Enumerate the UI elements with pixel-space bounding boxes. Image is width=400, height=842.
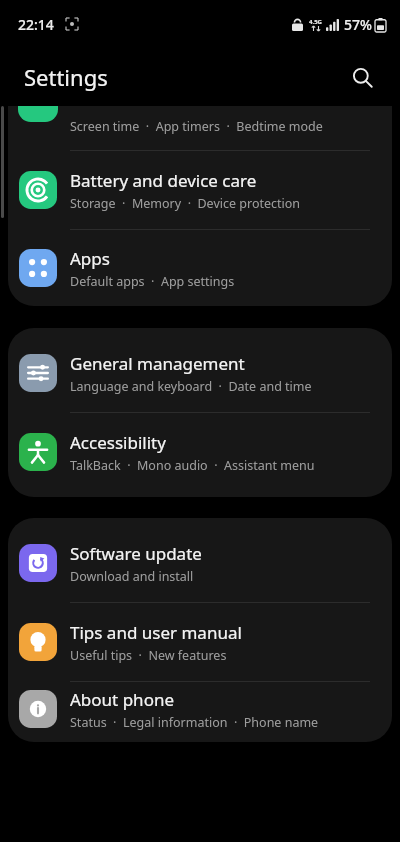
button[interactable]: About phone	[8, 682, 392, 736]
button[interactable]: General management	[8, 334, 392, 412]
staticText: 4.5G	[309, 18, 322, 26]
staticText: Useful tips · New features	[70, 647, 227, 664]
staticText: Tips and user manual	[70, 621, 242, 644]
staticText: 57%	[344, 15, 372, 34]
staticText: Download and install	[70, 568, 194, 585]
button[interactable]: Battery and device care	[8, 151, 392, 229]
staticText: TalkBack · Mono audio · Assistant menu	[70, 457, 315, 474]
staticText: Storage · Memory · Device protection	[70, 195, 301, 212]
staticText: Battery and device care	[70, 169, 257, 192]
staticText: Accessibility	[70, 431, 166, 454]
button[interactable]: Screen time · App timers · Bedtime mode	[8, 106, 392, 150]
staticText: Apps	[70, 247, 110, 270]
button[interactable]: Software update	[8, 524, 392, 602]
staticText: About phone	[70, 688, 175, 711]
button[interactable]: Search settings	[340, 55, 384, 99]
staticText: General management	[70, 352, 245, 375]
staticText: Status · Legal information · Phone name	[70, 714, 319, 731]
button[interactable]: Accessibility	[8, 413, 392, 491]
staticText: Software update	[70, 542, 202, 565]
button[interactable]: Tips and user manual	[8, 603, 392, 681]
staticText: Default apps · App settings	[70, 273, 235, 290]
staticText: Screen time · App timers · Bedtime mode	[70, 118, 323, 135]
staticText: Settings	[24, 62, 108, 92]
staticText: 22:14	[18, 15, 54, 34]
staticText: Language and keyboard · Date and time	[70, 378, 312, 395]
button[interactable]: Apps	[8, 230, 392, 306]
